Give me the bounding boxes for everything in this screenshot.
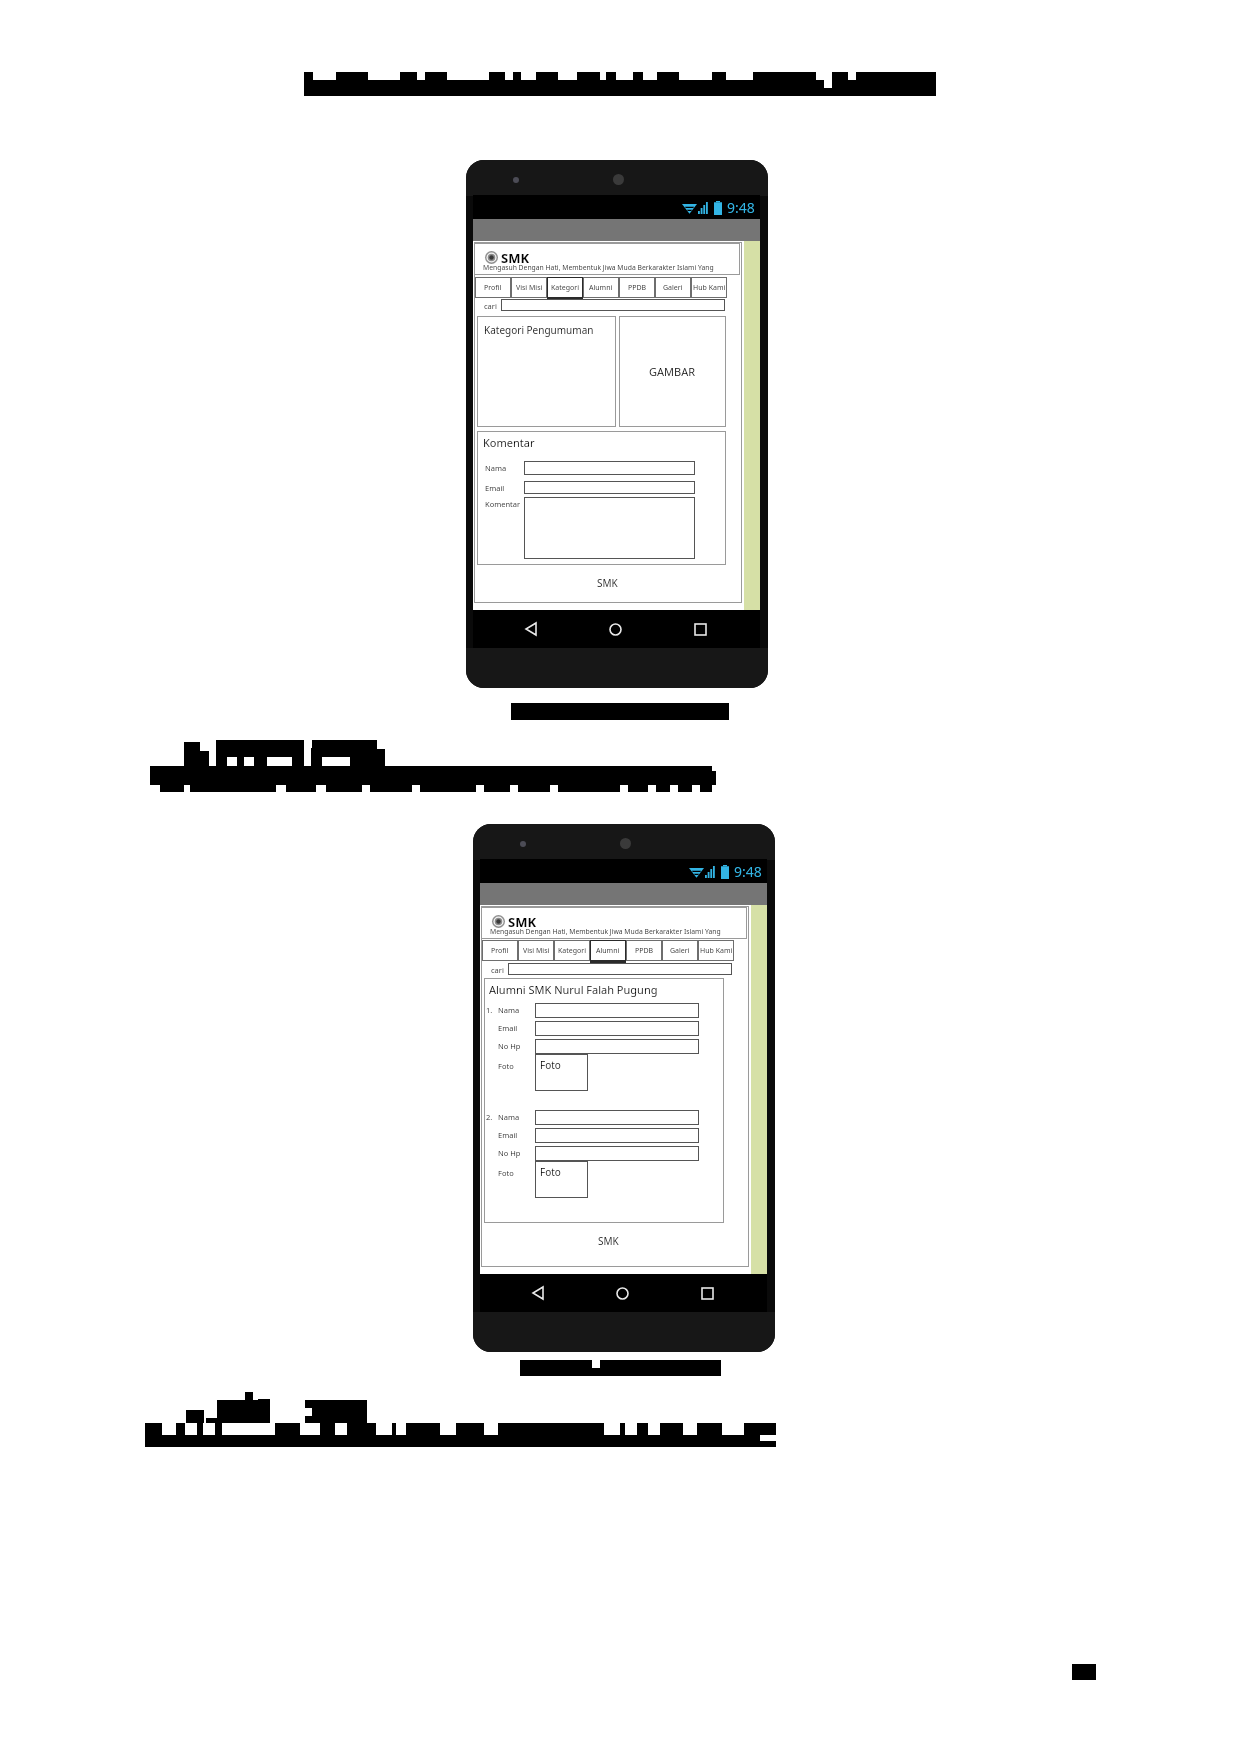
button[interactable]: Alumni: [590, 940, 626, 961]
staticText: Mengasuh Dengan Hati, Membentuk Jiwa Mud…: [490, 927, 721, 936]
button[interactable]: Visi Misi: [511, 277, 547, 298]
button[interactable]: Hub Kami: [691, 277, 727, 298]
staticText: 2.: [486, 1112, 493, 1122]
button[interactable]: Recents: [687, 616, 713, 642]
staticText: No Hp: [498, 1148, 521, 1158]
staticText: Profil: [491, 946, 509, 956]
button[interactable]: Profil: [475, 277, 511, 298]
staticText: Galeri: [663, 283, 683, 293]
button[interactable]: Back: [525, 1280, 551, 1306]
staticText: Foto: [498, 1168, 514, 1178]
staticText: 9:48: [734, 862, 762, 881]
staticText: Mengasuh Dengan Hati, Membentuk Jiwa Mud…: [483, 263, 714, 272]
button[interactable]: Back: [518, 616, 544, 642]
staticText: Foto: [540, 1058, 561, 1072]
staticText: cari: [484, 301, 497, 311]
staticText: cari: [491, 965, 504, 975]
staticText: SMK: [501, 249, 530, 267]
staticText: SMK: [597, 576, 618, 590]
staticText: Kategori: [558, 946, 586, 956]
staticText: Email: [485, 483, 505, 493]
staticText: Email: [498, 1023, 518, 1033]
staticText: Visi Misi: [523, 946, 550, 956]
button[interactable]: Kategori: [547, 277, 583, 298]
button[interactable]: Hub Kami: [698, 940, 734, 961]
staticText: Foto: [540, 1165, 561, 1179]
staticText: GAMBAR: [649, 364, 696, 379]
staticText: Komentar: [483, 435, 535, 450]
staticText: PPDB: [635, 946, 654, 956]
staticText: Foto: [498, 1061, 514, 1071]
staticText: Profil: [484, 283, 502, 293]
staticText: Nama: [485, 463, 507, 473]
staticText: SMK: [508, 913, 537, 931]
staticText: No Hp: [498, 1041, 521, 1051]
staticText: Email: [498, 1130, 518, 1140]
staticText: Alumni SMK Nurul Falah Pugung: [489, 982, 658, 997]
button[interactable]: Visi Misi: [518, 940, 554, 961]
button[interactable]: Alumni: [583, 277, 619, 298]
staticText: Hub Kami: [693, 283, 726, 293]
button[interactable]: PPDB: [626, 940, 662, 961]
staticText: Kategori Pengumuman: [484, 323, 594, 337]
staticText: Komentar: [485, 499, 521, 509]
button[interactable]: PPDB: [619, 277, 655, 298]
button[interactable]: Kategori: [554, 940, 590, 961]
staticText: SMK: [598, 1234, 619, 1248]
staticText: Visi Misi: [516, 283, 543, 293]
button[interactable]: Galeri: [655, 277, 691, 298]
staticText: Alumni: [596, 946, 620, 956]
button[interactable]: Profil: [482, 940, 518, 961]
staticText: Nama: [498, 1005, 520, 1015]
staticText: 9:48: [727, 198, 755, 217]
button[interactable]: Home: [602, 616, 628, 642]
staticText: Alumni: [589, 283, 613, 293]
button[interactable]: Galeri: [662, 940, 698, 961]
staticText: Nama: [498, 1112, 520, 1122]
staticText: Hub Kami: [700, 946, 733, 956]
staticText: 1.: [486, 1005, 493, 1015]
button[interactable]: Recents: [694, 1280, 720, 1306]
staticText: PPDB: [628, 283, 647, 293]
staticText: Kategori: [551, 283, 579, 293]
button[interactable]: Home: [609, 1280, 635, 1306]
staticText: Galeri: [670, 946, 690, 956]
